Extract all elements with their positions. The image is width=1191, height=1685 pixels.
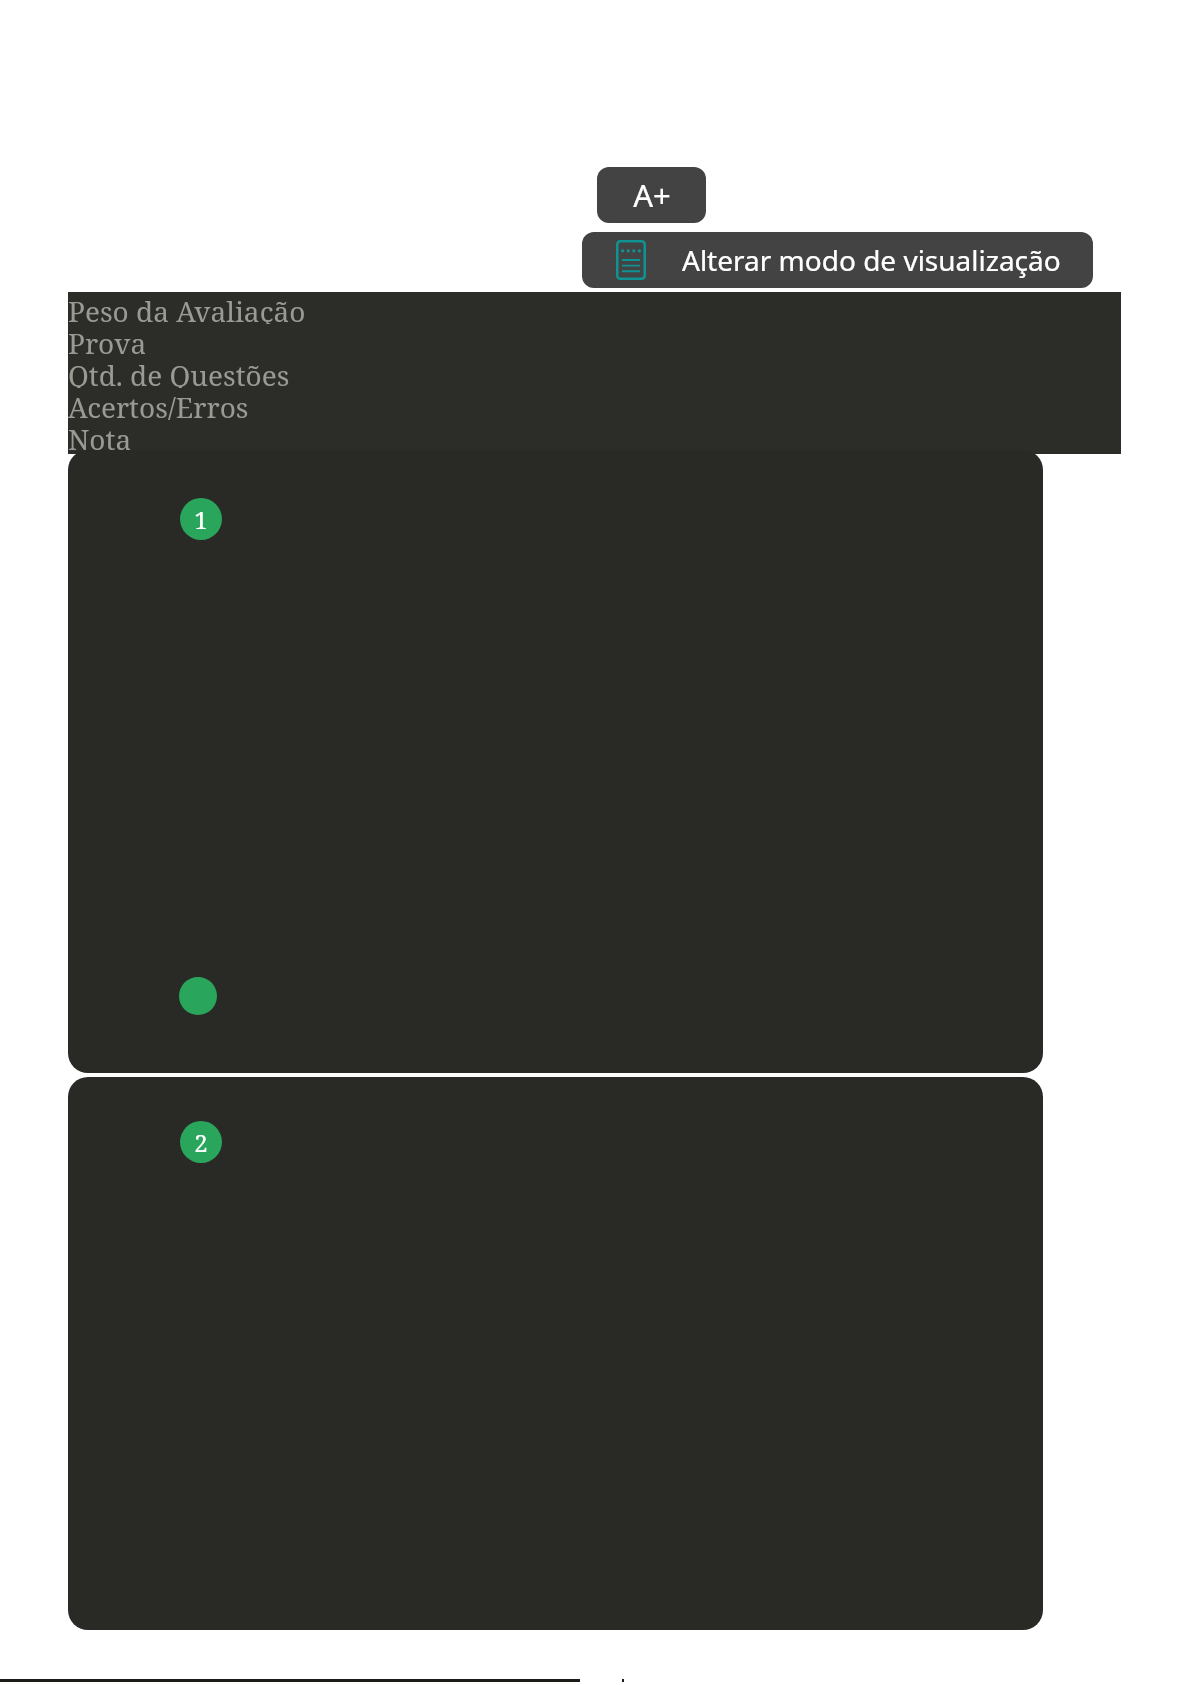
button[interactable]: 1	[68, 450, 1043, 1073]
staticText: Peso da Avaliação	[68, 292, 306, 324]
button[interactable]: A+	[597, 167, 706, 223]
staticText: Qtd. de Questões	[68, 356, 290, 388]
staticText: 1	[194, 503, 208, 536]
button[interactable]: Alterar modo de visualização	[582, 232, 1093, 288]
button[interactable]: 2	[68, 1077, 1043, 1630]
staticText: Alterar modo de visualização	[682, 241, 1061, 279]
staticText: A+	[633, 174, 671, 216]
staticText: Nota	[68, 420, 132, 452]
staticText: Prova	[68, 324, 147, 356]
staticText: 2	[194, 1126, 208, 1159]
staticText: Acertos/Erros	[68, 388, 249, 420]
other: Alterar modo de visualização	[616, 240, 646, 280]
